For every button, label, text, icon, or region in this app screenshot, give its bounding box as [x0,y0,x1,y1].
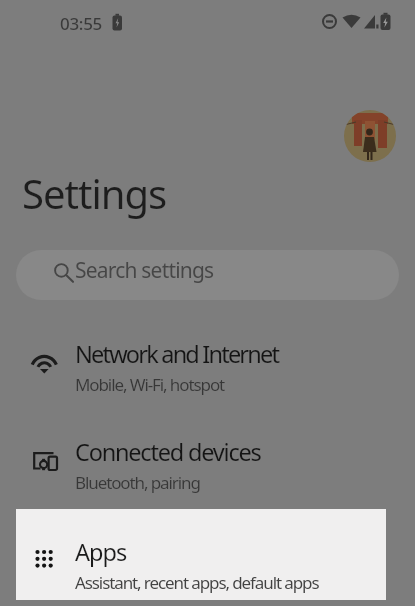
staticText: 03:55 [60,12,103,35]
button[interactable]: Connected devices [0,414,415,509]
staticText: Network and Internet [75,338,279,370]
button[interactable] [344,110,396,162]
staticText: Bluetooth, pairing [75,471,200,494]
staticText: Settings [22,166,167,220]
button[interactable]: Network and Internet [0,316,415,411]
button[interactable]: Apps [0,514,415,606]
staticText: Assistant, recent apps, default apps [75,571,319,594]
staticText: Mobile, Wi-Fi, hotspot [75,373,225,396]
button[interactable]: Search settings [16,250,399,300]
staticText: Apps [75,536,127,568]
staticText: Connected devices [75,436,261,468]
staticText: Search settings [75,256,214,285]
